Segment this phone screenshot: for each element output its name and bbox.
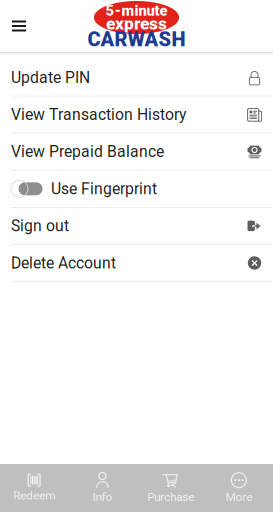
staticText: Info bbox=[92, 490, 112, 504]
button[interactable]: Update PIN bbox=[0, 59, 273, 96]
button[interactable]: Info bbox=[68, 464, 136, 512]
button[interactable]: Use Fingerprint bbox=[0, 171, 273, 208]
button[interactable]: Menu bbox=[0, 0, 40, 51]
staticText: 5-minute bbox=[105, 2, 167, 19]
button[interactable]: More bbox=[205, 464, 273, 512]
staticText: express bbox=[106, 13, 167, 34]
staticText: Delete Account bbox=[11, 254, 116, 272]
button[interactable]: Purchase bbox=[136, 464, 205, 512]
staticText: View Transaction History bbox=[11, 105, 186, 124]
button[interactable]: Sign out bbox=[0, 208, 273, 245]
button[interactable]: View Transaction History bbox=[0, 96, 273, 133]
staticText: Purchase bbox=[147, 490, 194, 504]
button[interactable]: View Prepaid Balance bbox=[0, 133, 273, 171]
staticText: CARWASH bbox=[87, 28, 185, 51]
staticText: Update PIN bbox=[11, 68, 90, 87]
button[interactable]: Redeem bbox=[0, 464, 68, 512]
button[interactable]: Delete Account bbox=[0, 245, 273, 282]
staticText: More bbox=[225, 490, 252, 504]
staticText: Redeem bbox=[13, 489, 55, 502]
staticText: View Prepaid Balance bbox=[11, 142, 164, 161]
staticText: Use Fingerprint bbox=[51, 180, 157, 198]
staticText: Sign out bbox=[11, 217, 69, 235]
